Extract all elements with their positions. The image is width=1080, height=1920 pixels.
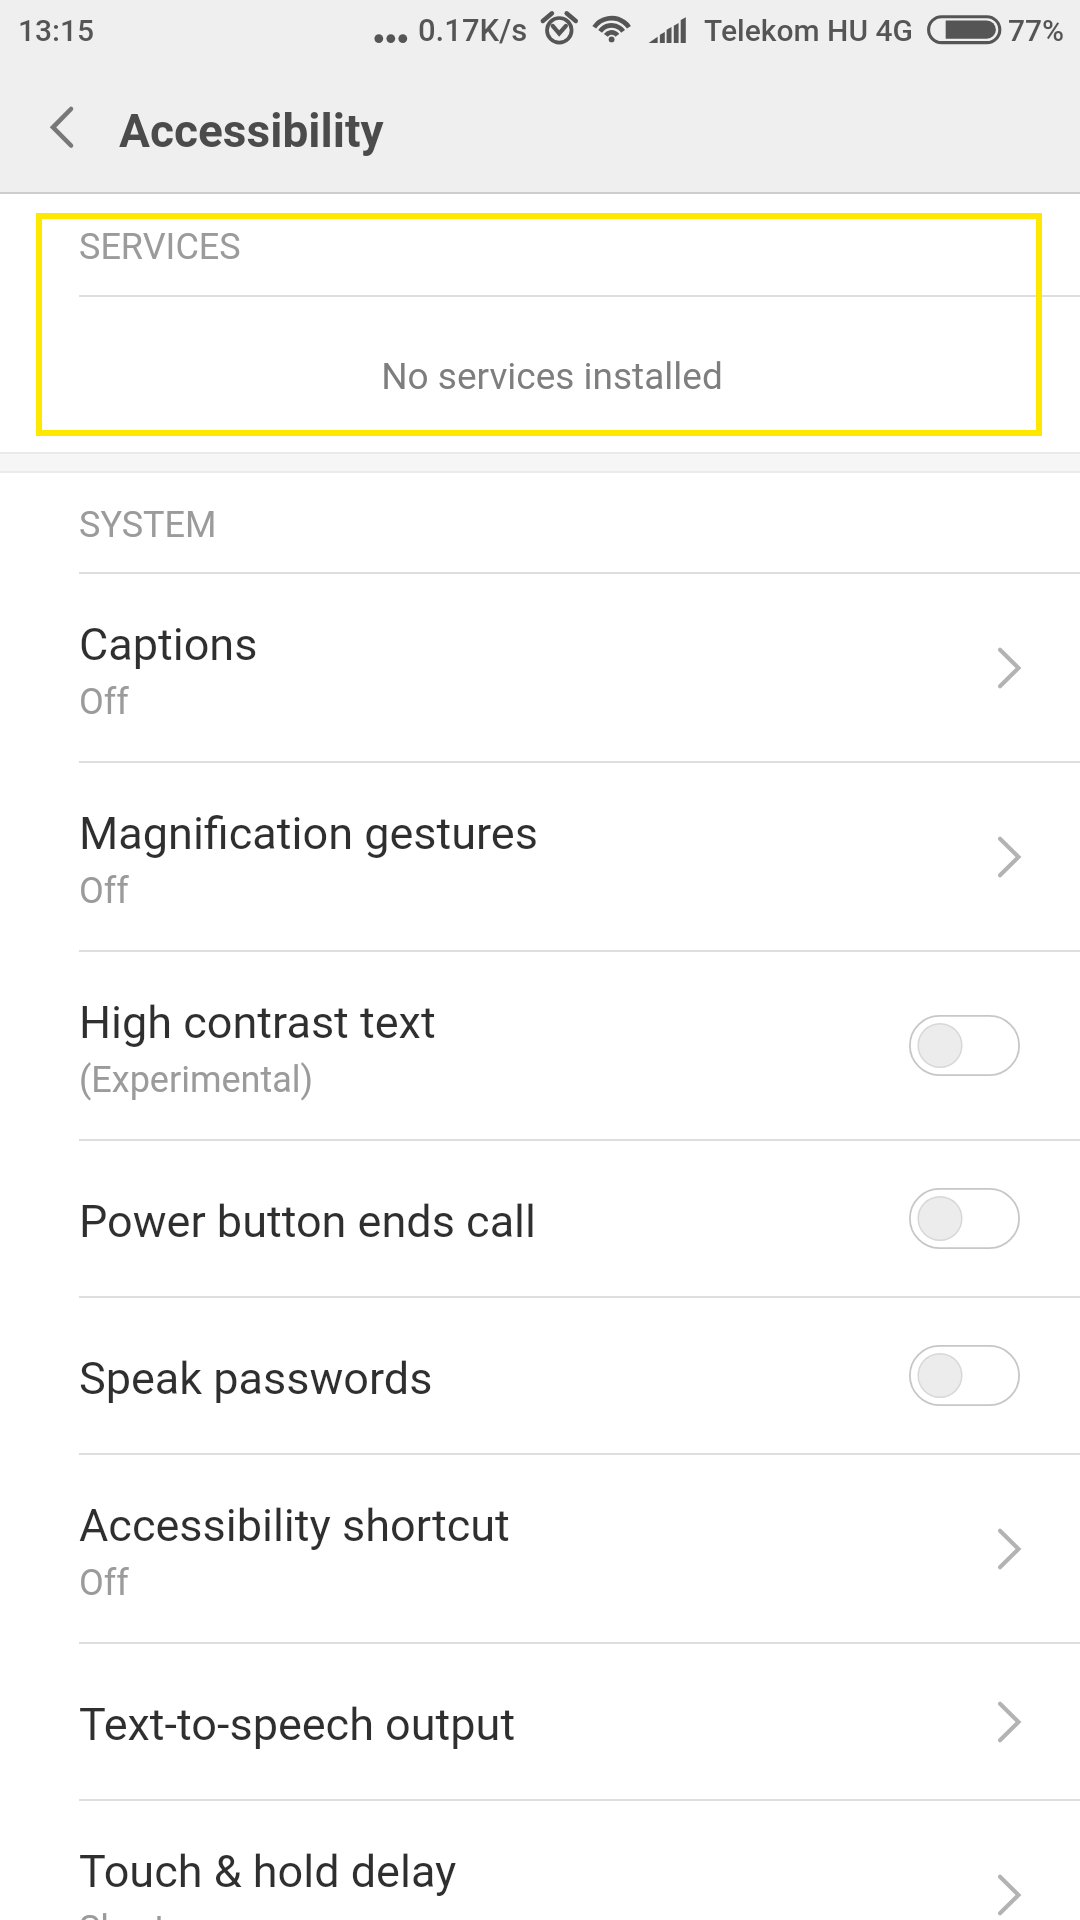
button[interactable]: Toggle high contrast text [909,1015,1020,1076]
staticText: (Experimental) [79,1059,314,1101]
button[interactable]: Captions [0,574,1080,763]
button[interactable]: Accessibility shortcut [0,1455,1080,1644]
staticText: Accessibility shortcut [79,1499,510,1552]
staticText: Accessibility [119,104,384,158]
staticText: Touch & hold delay [79,1845,457,1898]
button[interactable]: Magnification gestures [0,763,1080,952]
staticText: Captions [79,618,258,671]
button[interactable]: Text-to-speech output [0,1644,1080,1801]
button[interactable]: Back [20,72,104,182]
staticText: Telekom HU 4G [704,13,913,48]
staticText: 0.17K/s [418,12,528,48]
button[interactable]: Touch & hold delay [0,1801,1080,1920]
staticText: Off [79,1562,129,1604]
staticText: Text-to-speech output [79,1698,516,1751]
button[interactable]: High contrast text [0,952,1080,1141]
staticText: 77% [1008,13,1065,48]
staticText: Speak passwords [79,1352,433,1405]
staticText: Short [79,1908,166,1920]
staticText: Off [79,681,129,723]
button[interactable]: Speak passwords [0,1298,1080,1455]
staticText: High contrast text [79,996,436,1049]
staticText: Off [79,870,129,912]
staticText: SYSTEM [79,504,217,546]
staticText: Power button ends call [79,1195,537,1248]
staticText: No services installed [381,355,723,398]
staticText: SERVICES [79,226,241,268]
button[interactable]: Toggle power button ends call [909,1188,1020,1249]
staticText: 13:15 [18,13,95,48]
staticText: Magnification gestures [79,807,538,860]
button[interactable]: Toggle speak passwords [909,1345,1020,1406]
button[interactable]: Power button ends call [0,1141,1080,1298]
